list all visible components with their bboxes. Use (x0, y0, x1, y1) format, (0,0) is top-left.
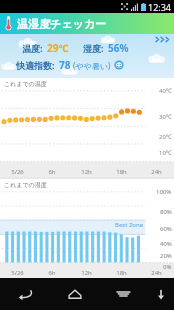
staticText: 温湿度チェッカー (17, 17, 107, 31)
staticText: 80% (160, 208, 172, 216)
staticText: 56% (108, 41, 129, 55)
staticText: 12h (81, 269, 92, 277)
staticText: 10℃ (159, 149, 172, 157)
staticText: これまでの湿度 (4, 181, 47, 189)
button[interactable]: これまでの温度 (0, 78, 174, 177)
staticText: 12h (81, 168, 92, 176)
button[interactable]: Hide (148, 278, 174, 310)
staticText: 6h (48, 269, 56, 277)
staticText: 20℃ (159, 133, 172, 141)
button[interactable]: More (0, 34, 174, 78)
button[interactable]: Back (0, 278, 50, 310)
staticText: 温度: (22, 42, 43, 54)
button[interactable]: これまでの湿度 (0, 179, 174, 278)
staticText: 5/26 (11, 269, 24, 277)
staticText: 60% (160, 225, 172, 233)
button[interactable]: Home (50, 278, 99, 310)
staticText: 18h (116, 269, 127, 277)
staticText: 78 (59, 58, 71, 72)
staticText: 30℃ (159, 113, 172, 121)
staticText: 快適指数: (16, 59, 55, 71)
button[interactable]: 温湿度チェッカー (0, 13, 174, 34)
staticText: 24h (151, 168, 162, 176)
staticText: 100% (156, 188, 172, 196)
staticText: 0% (163, 263, 172, 271)
staticText: 40% (160, 240, 172, 248)
staticText: これまでの温度 (4, 80, 47, 88)
staticText: 18h (116, 168, 127, 176)
staticText: 湿度: (83, 42, 104, 54)
button[interactable]: Recent apps (99, 278, 148, 310)
staticText: 24h (151, 269, 162, 277)
staticText: 20% (160, 252, 172, 260)
staticText: (やや暑い) (73, 60, 111, 71)
staticText: 29℃ (47, 41, 69, 55)
staticText: Best Zone (115, 221, 144, 229)
staticText: 6h (48, 168, 56, 176)
button[interactable]: More (155, 36, 171, 43)
staticText: 5/26 (11, 168, 24, 176)
staticText: 40℃ (159, 87, 172, 95)
staticText: 12:34 (148, 1, 172, 13)
